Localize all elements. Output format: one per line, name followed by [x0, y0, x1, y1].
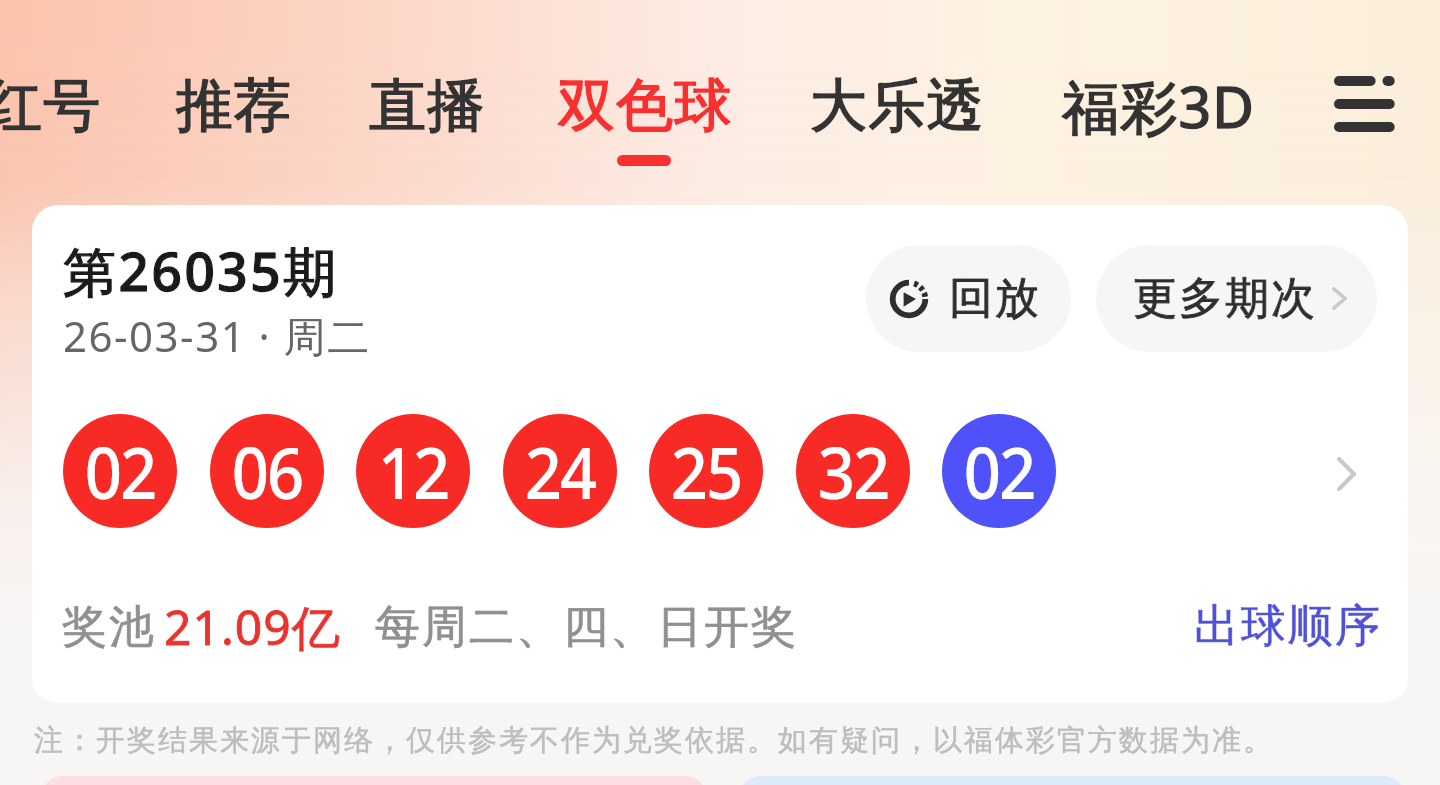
staticText: 大乐透 — [810, 70, 985, 142]
staticText: 出球顺序 — [1193, 598, 1381, 655]
staticText: 双色球 — [558, 70, 733, 142]
staticText: 出球顺序 — [1193, 598, 1381, 655]
staticText: 双色球 — [558, 70, 733, 142]
staticText: 直播 — [369, 70, 486, 142]
staticText: 第26035期 — [63, 234, 339, 306]
staticText: 大乐透 — [810, 70, 985, 142]
button[interactable]: 25 — [649, 414, 763, 528]
staticText: 每周二、四、日开奖 — [374, 599, 797, 656]
button[interactable]: 双色球 — [532, 58, 759, 154]
staticText: 福彩3D — [1062, 67, 1256, 145]
staticText: 21.09亿 — [164, 594, 341, 660]
button[interactable]: 32 — [796, 414, 910, 528]
staticText: 注：开奖结果来源于网络，仅供参考不作为兑奖依据。如有疑问，以福体彩官方数据为准。 — [33, 722, 1273, 759]
staticText: 26-03-31 · 周二 — [63, 307, 371, 364]
staticText: 推荐 — [176, 70, 293, 142]
button[interactable]: More numbers — [1308, 434, 1388, 514]
button[interactable]: 直播 — [343, 58, 512, 154]
button[interactable]: 福彩3D — [1036, 58, 1282, 154]
button[interactable]: 12 — [356, 414, 470, 528]
button[interactable]: Menu — [1316, 56, 1412, 152]
staticText: 24 — [525, 424, 596, 519]
staticText: 21.09亿 — [164, 594, 341, 660]
button[interactable] — [740, 776, 1404, 785]
staticText: 每周二、四、日开奖 — [374, 599, 797, 656]
staticText: 福彩3D — [1062, 67, 1256, 145]
staticText: 第26035期 — [63, 234, 339, 306]
button[interactable]: 02 — [63, 414, 177, 528]
staticText: 12 — [378, 424, 449, 519]
button[interactable]: 02 — [942, 414, 1056, 528]
staticText: 红号 — [0, 70, 102, 142]
staticText: 注：开奖结果来源于网络，仅供参考不作为兑奖依据。如有疑问，以福体彩官方数据为准。 — [33, 722, 1273, 759]
staticText: 直播 — [369, 70, 486, 142]
button[interactable]: 更多期次 — [1096, 245, 1377, 352]
button[interactable] — [42, 776, 706, 785]
button[interactable]: 大乐透 — [784, 58, 1011, 154]
staticText: 奖池 — [61, 599, 155, 656]
button[interactable]: 红号 — [0, 58, 128, 154]
button[interactable]: 出球顺序 — [1173, 582, 1401, 671]
staticText: 红号 — [0, 70, 102, 142]
button[interactable]: 推荐 — [150, 58, 319, 154]
staticText: 32 — [818, 424, 889, 519]
staticText: 02 — [964, 424, 1035, 519]
staticText: 奖池 — [61, 599, 155, 656]
staticText: 06 — [232, 424, 303, 519]
button[interactable]: 回放 — [866, 245, 1071, 352]
staticText: 更多期次 — [1132, 271, 1316, 326]
staticText: 25 — [671, 424, 742, 519]
button[interactable]: 24 — [503, 414, 617, 528]
staticText: 更多期次 — [1132, 271, 1316, 326]
staticText: 回放 — [948, 271, 1040, 326]
staticText: 推荐 — [176, 70, 293, 142]
staticText: 回放 — [948, 271, 1040, 326]
staticText: 02 — [85, 424, 156, 519]
button[interactable]: 06 — [210, 414, 324, 528]
